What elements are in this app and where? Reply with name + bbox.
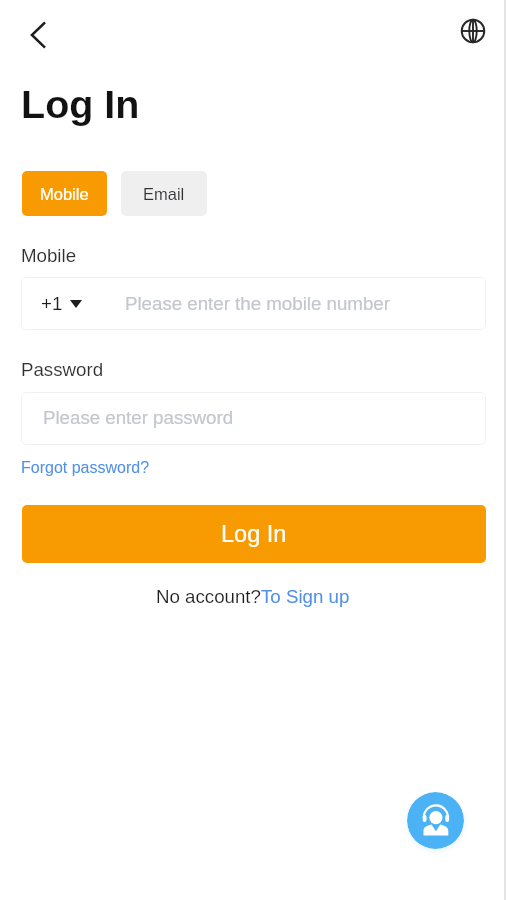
staticText: Mobile [21,245,77,266]
button[interactable]: Language [453,11,493,51]
staticText: Password [21,359,104,380]
button[interactable]: Back [16,13,60,57]
button[interactable]: +1 [21,277,486,330]
button[interactable]: Email [121,171,207,216]
staticText: +1 [41,293,63,314]
staticText: To Sign up [261,586,350,607]
button[interactable]: Forgot password? [21,459,150,477]
button[interactable]: Customer service [407,792,464,849]
staticText: Please enter the mobile number [125,293,390,314]
button[interactable]: Please enter password [21,392,486,445]
button[interactable]: To Sign up [261,586,350,607]
staticText: Log In [221,521,287,547]
button[interactable]: Mobile [22,171,107,216]
staticText: Please enter password [43,407,234,428]
button[interactable]: Log In [22,505,486,563]
staticText: Email [143,185,185,203]
staticText: Forgot password? [21,459,150,477]
staticText: Log In [21,82,140,126]
staticText: Mobile [40,185,89,203]
staticText: No account? [156,586,261,607]
